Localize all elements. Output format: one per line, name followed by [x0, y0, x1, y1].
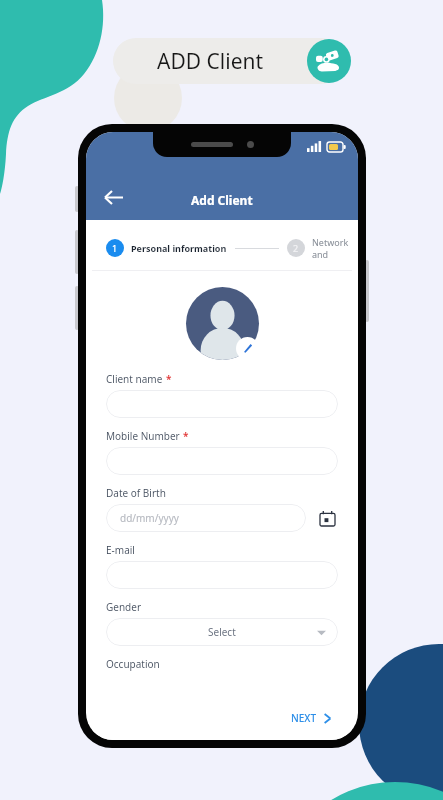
staticText: dd/mm/yyyy [120, 511, 179, 525]
staticText: Date of Birth [106, 486, 166, 500]
staticText: ADD Client [157, 47, 264, 76]
staticText: * [183, 429, 189, 443]
button[interactable]: NEXT [287, 708, 336, 728]
button[interactable]: 1 [106, 239, 124, 257]
button[interactable] [106, 561, 338, 589]
button[interactable]: Add client [307, 39, 351, 83]
button[interactable] [106, 447, 338, 475]
staticText: Occupation [106, 657, 160, 671]
staticText: 1 [112, 242, 118, 254]
staticText: NEXT [291, 711, 317, 725]
staticText: * [166, 372, 172, 386]
staticText: Network and [312, 236, 352, 260]
button[interactable]: Pick date [316, 507, 338, 529]
button[interactable]: ADD Client [113, 38, 344, 84]
button[interactable]: Edit photo [236, 337, 259, 360]
staticText: E-mail [106, 543, 135, 557]
staticText: 2 [293, 242, 299, 254]
staticText: Mobile Number [106, 429, 180, 443]
button[interactable] [106, 390, 338, 418]
staticText: Personal information [131, 242, 227, 254]
button[interactable]: 2 [287, 239, 305, 257]
button[interactable]: Select [106, 618, 338, 646]
staticText: Select [208, 625, 236, 639]
staticText: Client name [106, 372, 163, 386]
button[interactable]: dd/mm/yyyy [106, 504, 306, 532]
staticText: Add Client [191, 192, 253, 208]
button[interactable]: Back [96, 180, 130, 214]
staticText: Gender [106, 600, 142, 614]
